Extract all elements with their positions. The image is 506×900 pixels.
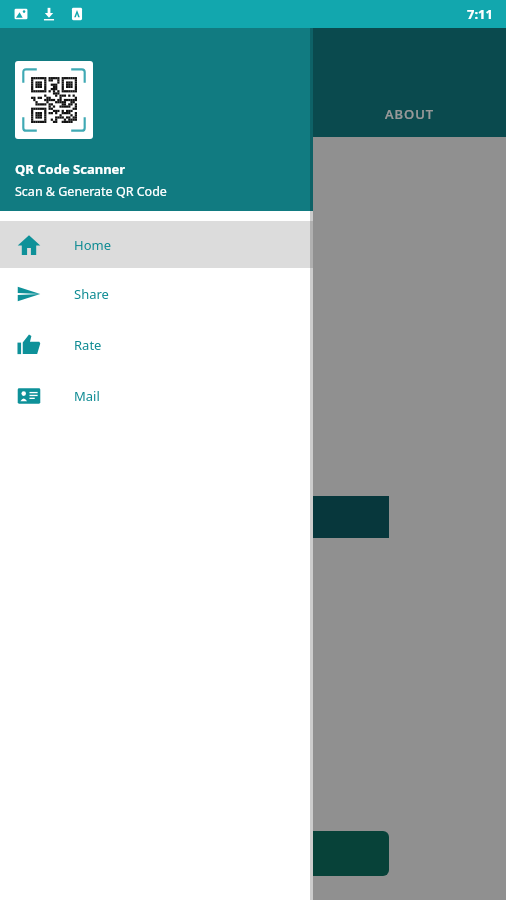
button[interactable]: DOWNLOAD bbox=[135, 831, 389, 876]
staticText: ABOUT bbox=[385, 105, 435, 123]
button[interactable]: Home bbox=[0, 221, 313, 268]
staticText: Mail bbox=[74, 387, 100, 405]
staticText: 7:11 bbox=[467, 5, 493, 23]
button[interactable]: Mail bbox=[0, 370, 313, 421]
button[interactable] bbox=[135, 496, 389, 538]
staticText: Scan & Generate QR Code bbox=[15, 183, 167, 200]
button[interactable]: Share bbox=[0, 268, 313, 319]
staticText: Share bbox=[74, 285, 109, 303]
staticText: Rate bbox=[74, 336, 102, 354]
button[interactable]: ABOUT bbox=[313, 91, 506, 137]
staticText: QR Code Scanner bbox=[15, 160, 126, 178]
staticText: Home bbox=[74, 236, 111, 254]
button[interactable]: Rate bbox=[0, 319, 313, 370]
